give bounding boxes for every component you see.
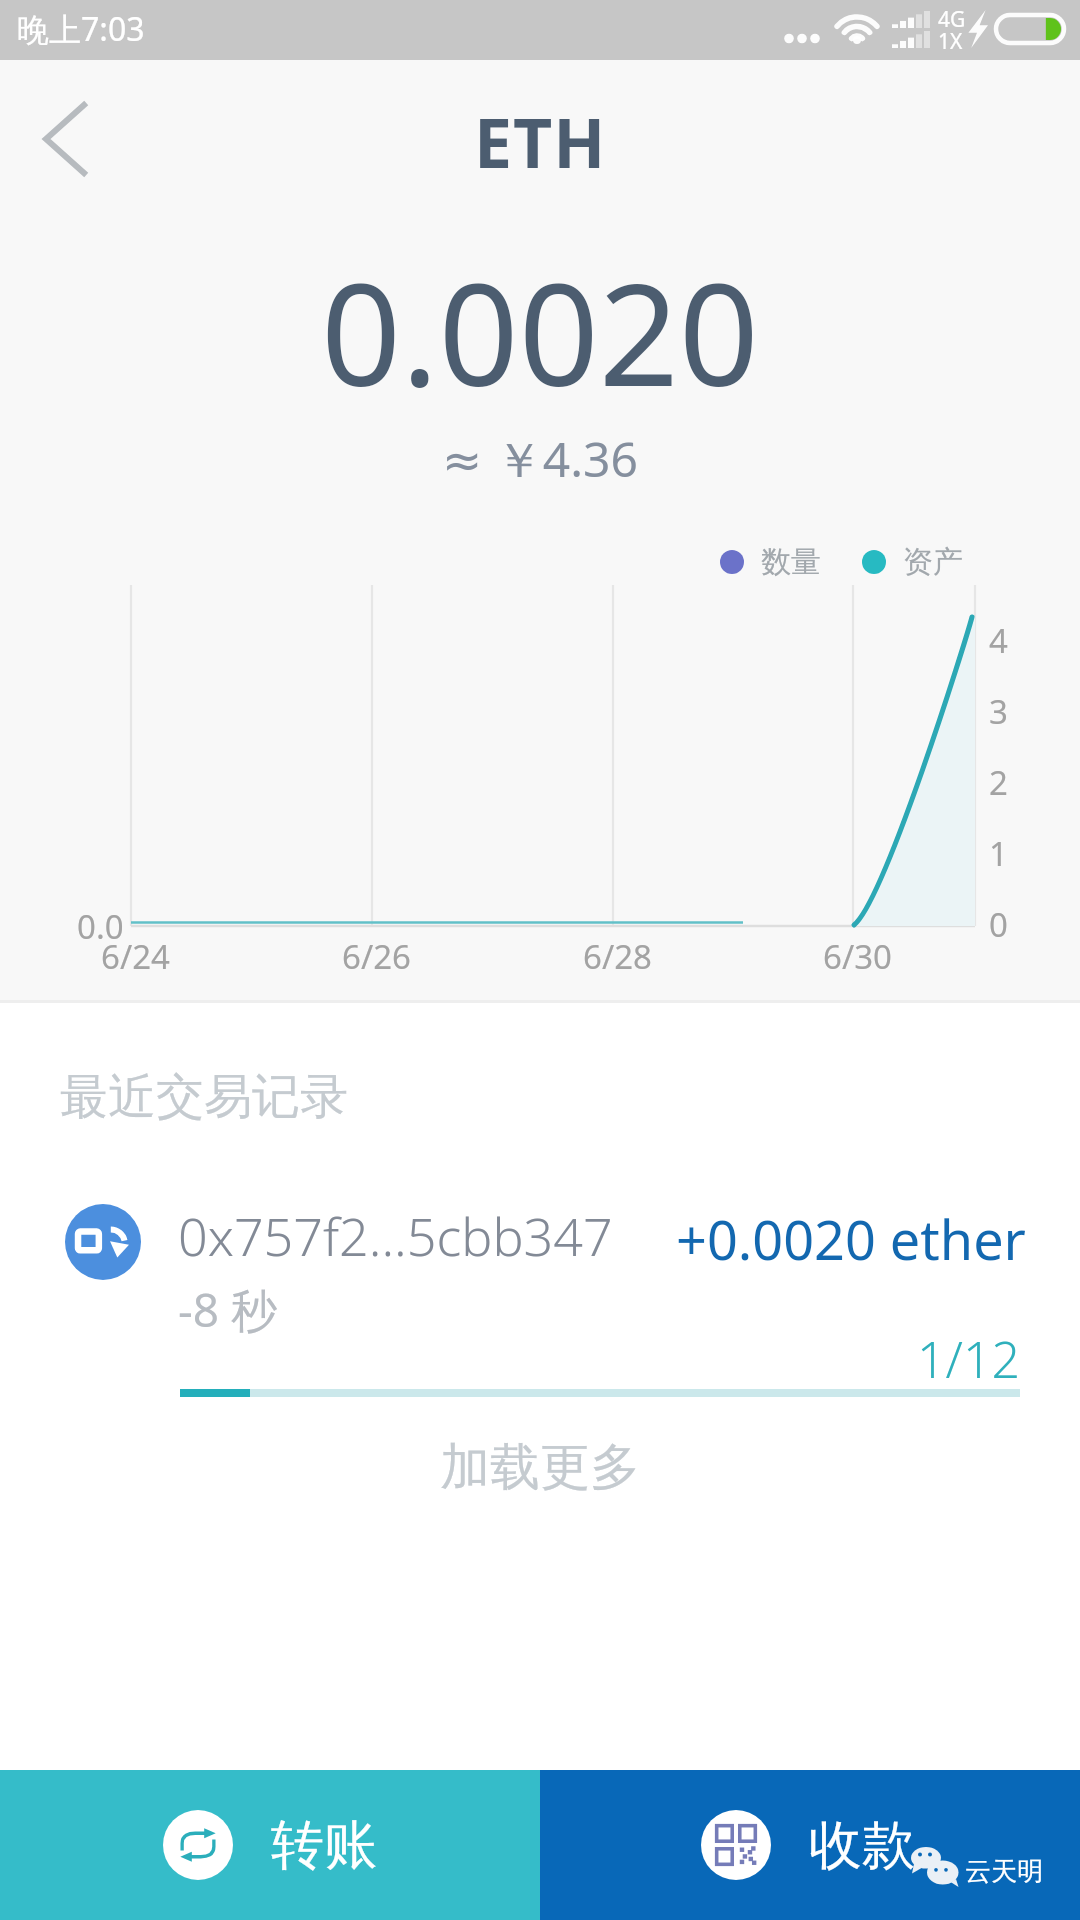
staticText: 云天明 [965, 1855, 1043, 1888]
button[interactable]: Back [0, 60, 140, 230]
staticText: 4 [989, 618, 1008, 663]
staticText: 加载更多 [440, 1436, 640, 1499]
staticText: 1 [989, 831, 1008, 876]
staticText: 6/28 [583, 934, 652, 979]
button[interactable]: 0x757f2...5cbb347 [0, 1180, 1080, 1340]
staticText: 数量 [761, 543, 821, 581]
staticText: 3 [989, 689, 1008, 734]
staticText: 0 [989, 902, 1008, 947]
staticText: 资产 [903, 543, 963, 581]
staticText: 6/30 [823, 934, 892, 979]
staticText: +0.0020 ether [676, 1202, 1026, 1276]
staticText: 4G [938, 5, 966, 34]
staticText: 6/24 [101, 934, 170, 979]
staticText: 0.0 [77, 904, 124, 949]
staticText: ETH [474, 95, 607, 188]
staticText: 1X [938, 27, 963, 56]
button[interactable]: 加载更多 [0, 1428, 1080, 1506]
button[interactable]: 转账 [0, 1770, 540, 1920]
staticText: 晚上7:03 [17, 7, 145, 51]
staticText: 转账 [271, 1812, 377, 1879]
staticText: 0.0020 [321, 236, 759, 427]
staticText: 1/12 [0, 1325, 1020, 1393]
staticText: 收款 [809, 1812, 915, 1879]
button[interactable]: 收款 [540, 1770, 1080, 1920]
staticText: ≈ ￥4.36 [442, 426, 638, 492]
staticText: 最近交易记录 [60, 1067, 348, 1127]
staticText: 6/26 [342, 934, 411, 979]
staticText: 2 [989, 760, 1008, 805]
staticText: 0x757f2...5cbb347 [178, 1200, 613, 1271]
staticText: -8 秒 [178, 1278, 278, 1341]
